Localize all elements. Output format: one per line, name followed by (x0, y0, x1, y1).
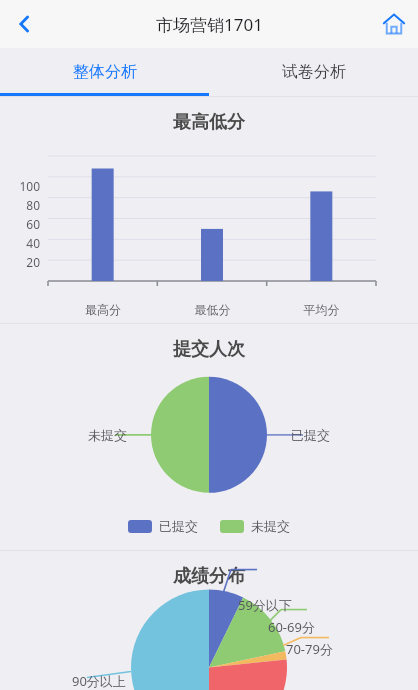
button[interactable]: 未提交 (220, 518, 290, 534)
staticText: 40 (8, 235, 40, 251)
button[interactable]: 已提交 (128, 518, 198, 534)
staticText: 最高分 (48, 302, 158, 317)
staticText: 平均分 (267, 302, 376, 317)
staticText: 60-69分 (268, 618, 315, 636)
staticText: 90分以上 (72, 672, 126, 690)
staticText: 市场营销1701 (156, 13, 263, 36)
staticText: 整体分析 (73, 62, 137, 82)
staticText: 未提交 (88, 427, 127, 443)
button[interactable]: 试卷分析 (209, 48, 418, 96)
staticText: 20 (8, 254, 40, 270)
staticText: 未提交 (251, 518, 290, 534)
staticText: 已提交 (291, 427, 330, 443)
staticText: 80 (8, 197, 40, 213)
button[interactable]: 整体分析 (0, 48, 209, 96)
staticText: 已提交 (159, 518, 198, 534)
staticText: 最高低分 (0, 111, 418, 134)
staticText: 60 (8, 216, 40, 232)
staticText: 最低分 (158, 302, 267, 317)
staticText: 提交人次 (0, 338, 418, 361)
staticText: 70-79分 (286, 640, 333, 658)
staticText: 成绩分布 (0, 565, 418, 588)
staticText: 59分以下 (238, 596, 292, 614)
button[interactable]: Home (370, 0, 418, 48)
button[interactable]: Back (0, 0, 48, 48)
staticText: 试卷分析 (282, 62, 346, 82)
staticText: 100 (8, 178, 40, 194)
